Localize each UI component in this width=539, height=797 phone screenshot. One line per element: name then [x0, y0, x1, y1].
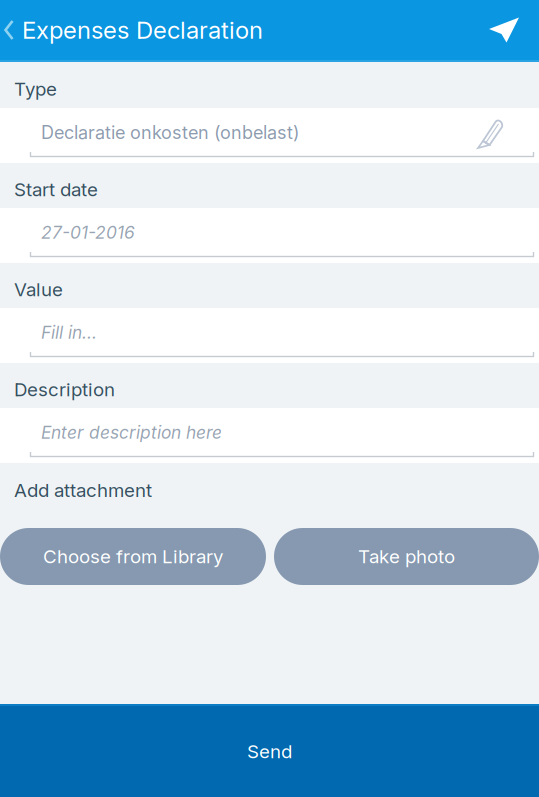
staticText: Declaratie onkosten (onbelast)	[41, 122, 300, 143]
staticText: Description	[14, 378, 115, 401]
button[interactable]: Send	[0, 704, 539, 797]
staticText: Expenses Declaration	[22, 15, 263, 44]
staticText: Type	[14, 78, 57, 100]
button[interactable]: Back	[0, 0, 22, 61]
button[interactable]: Enter description here	[0, 408, 539, 463]
button[interactable]: Send declaration	[469, 0, 539, 61]
staticText: Choose from Library	[43, 545, 223, 568]
staticText: Add attachment	[14, 479, 152, 502]
button[interactable]: Declaratie onkosten (onbelast)	[0, 108, 539, 163]
button[interactable]: 27-01-2016	[0, 208, 539, 263]
button[interactable]: Take photo	[274, 528, 539, 585]
button[interactable]: Fill in...	[0, 308, 539, 363]
staticText: Send	[247, 740, 292, 763]
staticText: Fill in...	[41, 322, 97, 343]
staticText: Value	[14, 278, 63, 301]
staticText: Take photo	[358, 545, 455, 568]
button[interactable]: Choose from Library	[0, 528, 266, 585]
staticText: 27-01-2016	[41, 222, 135, 243]
staticText: Enter description here	[41, 422, 222, 443]
staticText: Start date	[14, 178, 98, 201]
